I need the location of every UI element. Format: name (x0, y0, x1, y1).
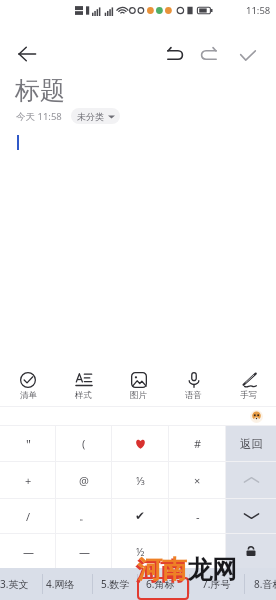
button[interactable]: 。 (56, 499, 112, 533)
button[interactable]: Scroll down (226, 499, 276, 533)
button[interactable]: — (0, 534, 56, 568)
staticText: — (23, 544, 34, 559)
button[interactable]: Lock keyboard (226, 534, 276, 568)
staticText: / (26, 509, 31, 524)
staticText: 样式 (75, 390, 92, 401)
button[interactable]: Heart emoji (112, 426, 169, 461)
staticText: 未分类 (77, 111, 104, 122)
staticText: 6.角标 (146, 577, 175, 591)
staticText: 河南 (135, 556, 185, 587)
staticText: 11:58 (246, 4, 271, 17)
button[interactable]: 4.网络 (46, 568, 75, 600)
staticText: 图片 (130, 390, 147, 401)
staticText: ½ (136, 544, 145, 559)
staticText: 返回 (240, 437, 263, 451)
button[interactable]: — (56, 534, 112, 568)
other: Scroll up (243, 475, 260, 485)
button[interactable]: 7.序号 (202, 568, 231, 600)
staticText: 5.数学 (101, 577, 130, 591)
staticText: + (25, 473, 32, 488)
button[interactable]: Back (14, 41, 40, 67)
button[interactable]: 未分类 (71, 108, 120, 124)
staticText: 语音 (185, 390, 202, 401)
staticText: 3.英文 (0, 577, 29, 591)
button[interactable] (169, 534, 226, 568)
staticText: @ (79, 473, 89, 488)
button[interactable]: 8.音标 (254, 568, 276, 600)
staticText: 今天 11:58 (16, 110, 62, 123)
button[interactable]: ½ (112, 534, 169, 568)
button[interactable]: / (0, 499, 56, 533)
button[interactable]: ✔ (112, 499, 169, 533)
button[interactable]: Redo (196, 42, 222, 68)
button[interactable]: 返回 (226, 426, 276, 461)
button[interactable]: Emoji (250, 410, 263, 423)
other: Scroll down (243, 511, 260, 521)
staticText: 。 (79, 509, 90, 523)
staticText: - (196, 509, 200, 524)
staticText: 8.音标 (254, 577, 276, 591)
button[interactable]: @ (56, 462, 112, 498)
staticText: 7.序号 (202, 577, 231, 591)
button[interactable]: " (0, 426, 56, 461)
button[interactable]: Undo (162, 42, 188, 68)
staticText: ⅓ (136, 473, 146, 488)
staticText: 手写 (240, 390, 257, 401)
button[interactable]: 样式 (56, 360, 111, 406)
button[interactable]: # (169, 426, 226, 461)
button[interactable]: + (0, 462, 56, 498)
staticText: 龙网 (187, 554, 237, 585)
staticText: — (79, 544, 90, 559)
staticText: ( (82, 436, 86, 451)
button[interactable]: ( (56, 426, 112, 461)
button[interactable]: 手写 (221, 360, 276, 406)
button[interactable]: ⅓ (112, 462, 169, 498)
staticText: " (26, 436, 31, 452)
staticText: # (194, 436, 202, 451)
staticText: 清单 (20, 390, 37, 401)
button[interactable]: - (169, 499, 226, 533)
button[interactable]: Scroll up (226, 462, 276, 498)
button[interactable] (137, 577, 189, 600)
button[interactable]: 3.英文 (0, 568, 29, 600)
button[interactable]: × (169, 462, 226, 498)
staticText: 4.网络 (46, 577, 75, 591)
other: Lock keyboard (244, 544, 258, 558)
button[interactable]: 图片 (111, 360, 166, 406)
button[interactable]: Done (235, 42, 261, 68)
button[interactable]: 5.数学 (101, 568, 130, 600)
staticText: × (194, 473, 201, 488)
button[interactable]: 语音 (166, 360, 221, 406)
button[interactable]: 清单 (0, 360, 56, 406)
button[interactable]: 6.角标 (146, 568, 175, 600)
staticText: ✔ (135, 509, 146, 523)
staticText: 河南 (137, 554, 187, 585)
staticText: 标题 (15, 75, 65, 106)
